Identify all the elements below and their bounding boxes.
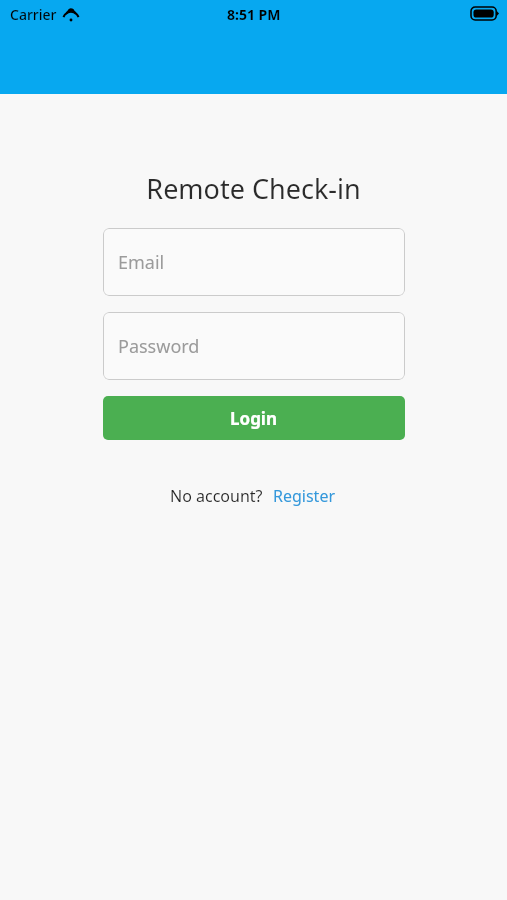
staticText: Password	[118, 334, 200, 359]
staticText: Carrier	[10, 5, 57, 24]
other: Battery full	[471, 7, 499, 20]
button[interactable]: Password	[103, 312, 405, 380]
staticText: 8:51 PM	[227, 5, 281, 24]
staticText: Email	[118, 250, 165, 275]
button[interactable]: Login	[103, 396, 405, 440]
button[interactable]: Register	[271, 483, 338, 509]
staticText: Login	[230, 407, 278, 430]
button[interactable]: Email	[103, 228, 405, 296]
staticText: No account?	[170, 485, 263, 507]
staticText: Register	[273, 485, 336, 507]
staticText: Remote Check-in	[146, 170, 361, 207]
